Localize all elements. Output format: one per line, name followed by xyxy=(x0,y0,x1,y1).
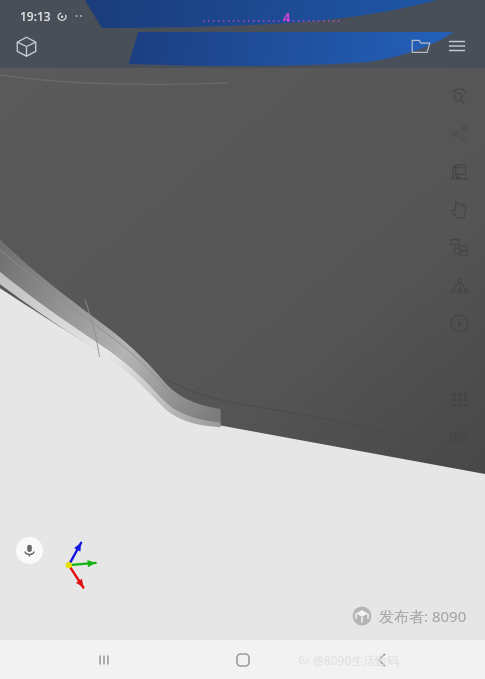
staticText: 4 xyxy=(283,8,291,26)
button[interactable]: Menu xyxy=(439,28,475,64)
button[interactable]: Recent apps xyxy=(76,640,132,679)
button[interactable]: 发布者: 8090 xyxy=(352,606,467,626)
staticText: 19:13 xyxy=(20,8,51,24)
button[interactable]: Back xyxy=(354,640,410,679)
button[interactable]: Home xyxy=(215,640,271,679)
staticText: @8090生活数码 xyxy=(313,652,400,668)
button[interactable]: Rotate model xyxy=(436,152,482,190)
button[interactable]: Hierarchy xyxy=(436,228,482,266)
staticText: 发布者: 8090 xyxy=(379,606,467,626)
button[interactable]: Open folder xyxy=(403,28,439,64)
button[interactable]: Voice input xyxy=(16,537,43,564)
button[interactable]: 3D model xyxy=(8,28,44,64)
